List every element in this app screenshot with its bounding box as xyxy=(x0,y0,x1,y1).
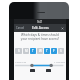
staticText: T xyxy=(46,49,48,53)
staticText: 9:41 xyxy=(37,20,43,24)
button[interactable] xyxy=(30,69,35,72)
staticText: W xyxy=(39,49,42,53)
button[interactable]: T xyxy=(44,48,50,54)
staticText: M xyxy=(25,49,28,53)
staticText: S xyxy=(18,49,20,53)
staticText: S xyxy=(60,49,62,53)
button[interactable]: T xyxy=(30,48,36,54)
button[interactable] xyxy=(46,69,51,72)
staticText: Edit Access xyxy=(32,26,49,30)
button[interactable]: Cancel xyxy=(14,26,25,30)
button[interactable]: S xyxy=(15,48,22,54)
staticText: 12:00 AM xyxy=(15,60,26,63)
button[interactable]: S xyxy=(58,48,64,54)
staticText: T xyxy=(32,49,34,53)
staticText: F xyxy=(53,49,55,53)
button[interactable]: M xyxy=(23,48,29,54)
staticText: 11:59 PM xyxy=(54,60,65,63)
button[interactable]: Close xyxy=(61,27,66,30)
staticText: Which days & times should your recipient… xyxy=(14,33,66,41)
button[interactable]: W xyxy=(37,48,43,54)
button[interactable]: F xyxy=(51,48,57,54)
